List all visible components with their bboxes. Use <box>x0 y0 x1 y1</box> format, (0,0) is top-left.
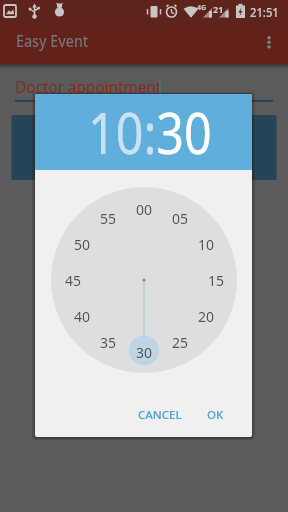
staticText: 4G <box>197 3 207 13</box>
staticText: 00 <box>136 200 153 219</box>
staticText: 15 <box>208 271 225 290</box>
staticText: 25 <box>172 333 189 352</box>
staticText: 21 <box>213 3 224 15</box>
staticText: Doctor appointment <box>15 75 162 98</box>
staticText: CANCEL <box>138 407 182 423</box>
staticText: 55 <box>100 209 117 228</box>
staticText: 20 <box>198 307 215 326</box>
staticText: 21:51 <box>250 4 280 21</box>
staticText: 05 <box>172 209 189 228</box>
staticText: 50 <box>74 235 91 254</box>
staticText: 45 <box>65 271 82 290</box>
staticText: 30 <box>136 343 153 362</box>
staticText: 10:30 <box>88 94 212 169</box>
staticText: 10 <box>198 235 215 254</box>
staticText: 35 <box>100 333 117 352</box>
staticText: OK <box>207 407 224 423</box>
staticText: 40 <box>74 307 91 326</box>
staticText: Easy Event <box>16 30 89 51</box>
